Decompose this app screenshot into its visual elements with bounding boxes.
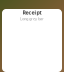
staticText: Long grey bar xyxy=(20,16,44,21)
staticText: Receipt xyxy=(22,9,41,16)
